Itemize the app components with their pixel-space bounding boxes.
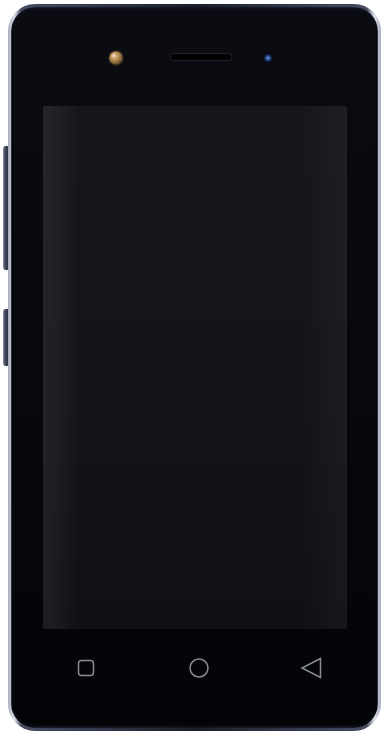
button[interactable]: Back [289,645,337,691]
button[interactable]: Power [2,308,12,366]
button[interactable]: Recent apps [62,645,110,691]
other: Smartphone product photo [0,0,390,737]
button[interactable]: Home [175,645,223,691]
button[interactable]: Volume [2,145,12,270]
